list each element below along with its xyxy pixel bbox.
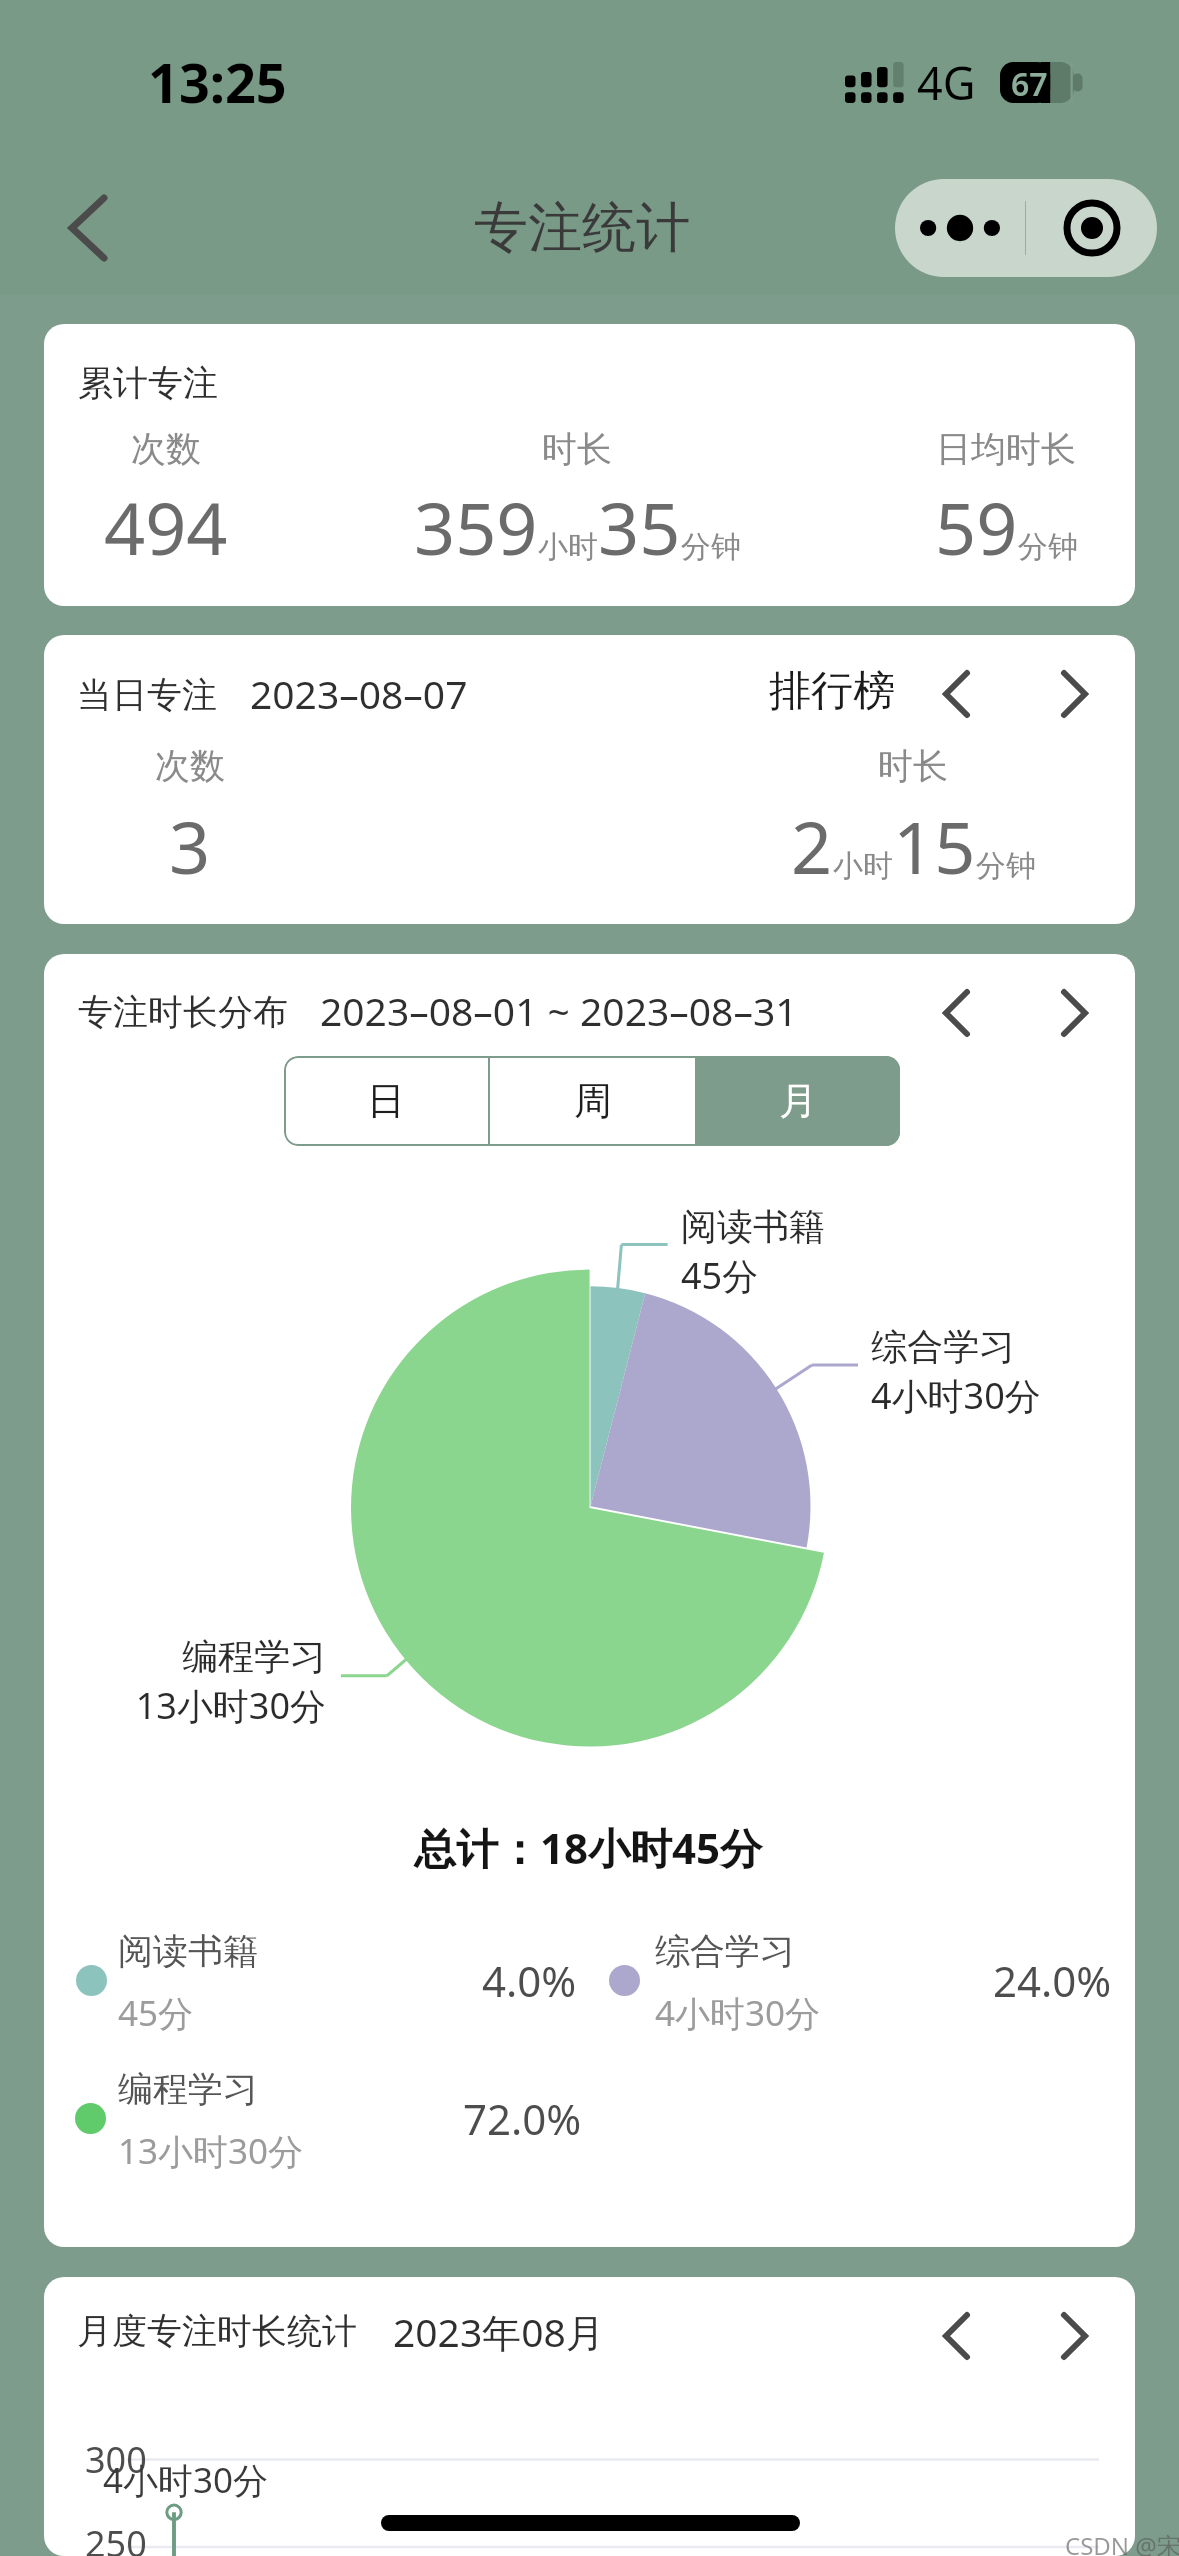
- staticText: 周: [574, 1077, 612, 1125]
- staticText: 次数: [131, 427, 201, 471]
- staticText: 2: [791, 797, 833, 895]
- staticText: 月: [779, 1077, 817, 1125]
- button[interactable]: Next: [1040, 660, 1108, 728]
- button[interactable]: 编程学习: [67, 2058, 567, 2178]
- staticText: 2023–08–07: [250, 667, 468, 720]
- staticText: 专注统计: [474, 194, 690, 262]
- staticText: CSDN @宋小羽: [1065, 2529, 1179, 2556]
- staticText: 67: [1011, 62, 1048, 103]
- button[interactable]: 阅读书籍: [68, 1920, 568, 2040]
- staticText: 月度专注时长统计: [77, 2309, 357, 2353]
- staticText: 分钟: [1018, 528, 1078, 566]
- button[interactable]: Next: [1040, 979, 1108, 1047]
- staticText: 累计专注: [78, 361, 218, 405]
- staticText: 2023–08–01 ~ 2023–08–31: [320, 984, 798, 1037]
- staticText: 分钟: [681, 528, 741, 566]
- staticText: 日: [367, 1077, 405, 1125]
- staticText: 日均时长: [936, 427, 1076, 471]
- staticText: 分钟: [976, 847, 1036, 885]
- staticText: 494: [104, 478, 228, 576]
- staticText: 45分: [118, 1989, 194, 2037]
- staticText: 359: [414, 478, 538, 576]
- staticText: 阅读书籍: [118, 1929, 258, 1973]
- staticText: 4小时30分: [655, 1989, 821, 2037]
- button[interactable]: 综合学习: [601, 1920, 1101, 2040]
- button[interactable]: Previous: [922, 979, 990, 1047]
- staticText: 阅读书籍 45分: [681, 1204, 825, 1299]
- button[interactable]: Back: [18, 162, 158, 294]
- staticText: 13小时30分: [118, 2127, 304, 2175]
- button[interactable]: Previous: [922, 660, 990, 728]
- button[interactable]: 排行榜: [769, 665, 895, 718]
- staticText: 4G: [917, 52, 976, 113]
- staticText: 24.0%: [993, 1952, 1112, 2009]
- button[interactable]: Previous: [922, 2302, 990, 2370]
- staticText: 300: [85, 2435, 147, 2484]
- button[interactable]: 日: [284, 1056, 488, 1146]
- staticText: 4.0%: [482, 1952, 577, 2009]
- staticText: 小时: [833, 847, 893, 885]
- button[interactable]: 月: [695, 1056, 900, 1146]
- staticText: 编程学习: [118, 2067, 258, 2111]
- staticText: 3: [169, 797, 211, 895]
- staticText: 59: [935, 478, 1018, 576]
- staticText: 时长: [878, 744, 948, 788]
- staticText: 小时: [538, 528, 598, 566]
- staticText: 2023年08月: [393, 2305, 605, 2358]
- staticText: 次数: [155, 744, 225, 788]
- staticText: 综合学习: [655, 1929, 795, 1973]
- staticText: 时长: [542, 427, 612, 471]
- staticText: 72.0%: [463, 2090, 582, 2147]
- staticText: 35: [598, 478, 681, 576]
- staticText: 4小时30分: [103, 2456, 269, 2504]
- button[interactable]: Close mini program: [1026, 179, 1157, 277]
- staticText: 编程学习 13小时30分: [135, 1634, 326, 1729]
- staticText: 专注时长分布: [78, 990, 288, 1034]
- staticText: 当日专注: [77, 673, 217, 717]
- staticText: 15: [893, 797, 976, 895]
- staticText: 总计：18小时45分: [414, 1819, 763, 1876]
- staticText: 250: [85, 2519, 147, 2556]
- button[interactable]: More: [895, 179, 1025, 277]
- staticText: 排行榜: [769, 665, 895, 718]
- staticText: 13:25: [148, 45, 287, 119]
- button[interactable]: 周: [490, 1056, 695, 1146]
- staticText: 综合学习 4小时30分: [871, 1324, 1041, 1419]
- button[interactable]: Next: [1040, 2302, 1108, 2370]
